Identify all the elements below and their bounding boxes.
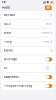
button[interactable]: Siri bbox=[1, 64, 54, 72]
staticText: 9:41 bbox=[2, 1, 6, 4]
button[interactable]: WLAN bbox=[1, 20, 54, 28]
staticText: Profil bbox=[2, 6, 10, 9]
button[interactable]: Hintergrund-Aktualisierung bbox=[1, 82, 54, 90]
staticText: Deutsch bbox=[41, 31, 49, 34]
button[interactable]: Bluetooth bbox=[1, 46, 54, 55]
staticText: Bluetooth bbox=[4, 49, 13, 52]
staticText: Standortdienste bbox=[4, 76, 19, 78]
staticText: Mein Konto bbox=[4, 14, 15, 16]
staticText: Hintergrund-Aktualisierung bbox=[4, 85, 32, 87]
staticText: Immer bbox=[42, 40, 49, 43]
button[interactable]: Mitteilungen bbox=[1, 55, 54, 64]
staticText: Ein bbox=[46, 23, 49, 25]
button[interactable]: Sprache bbox=[1, 29, 54, 37]
button[interactable]: Mein Konto bbox=[1, 11, 54, 19]
button[interactable]: Standortdienste bbox=[1, 73, 54, 81]
button[interactable]: Anzeige bbox=[1, 37, 54, 46]
staticText: Siri bbox=[4, 67, 8, 70]
staticText: WLAN bbox=[4, 23, 11, 25]
staticText: Anzeige bbox=[4, 40, 12, 43]
staticText: Sprache bbox=[4, 31, 11, 34]
staticText: Mitteilungen bbox=[4, 58, 17, 61]
button[interactable]: Nachricht bbox=[45, 5, 52, 10]
